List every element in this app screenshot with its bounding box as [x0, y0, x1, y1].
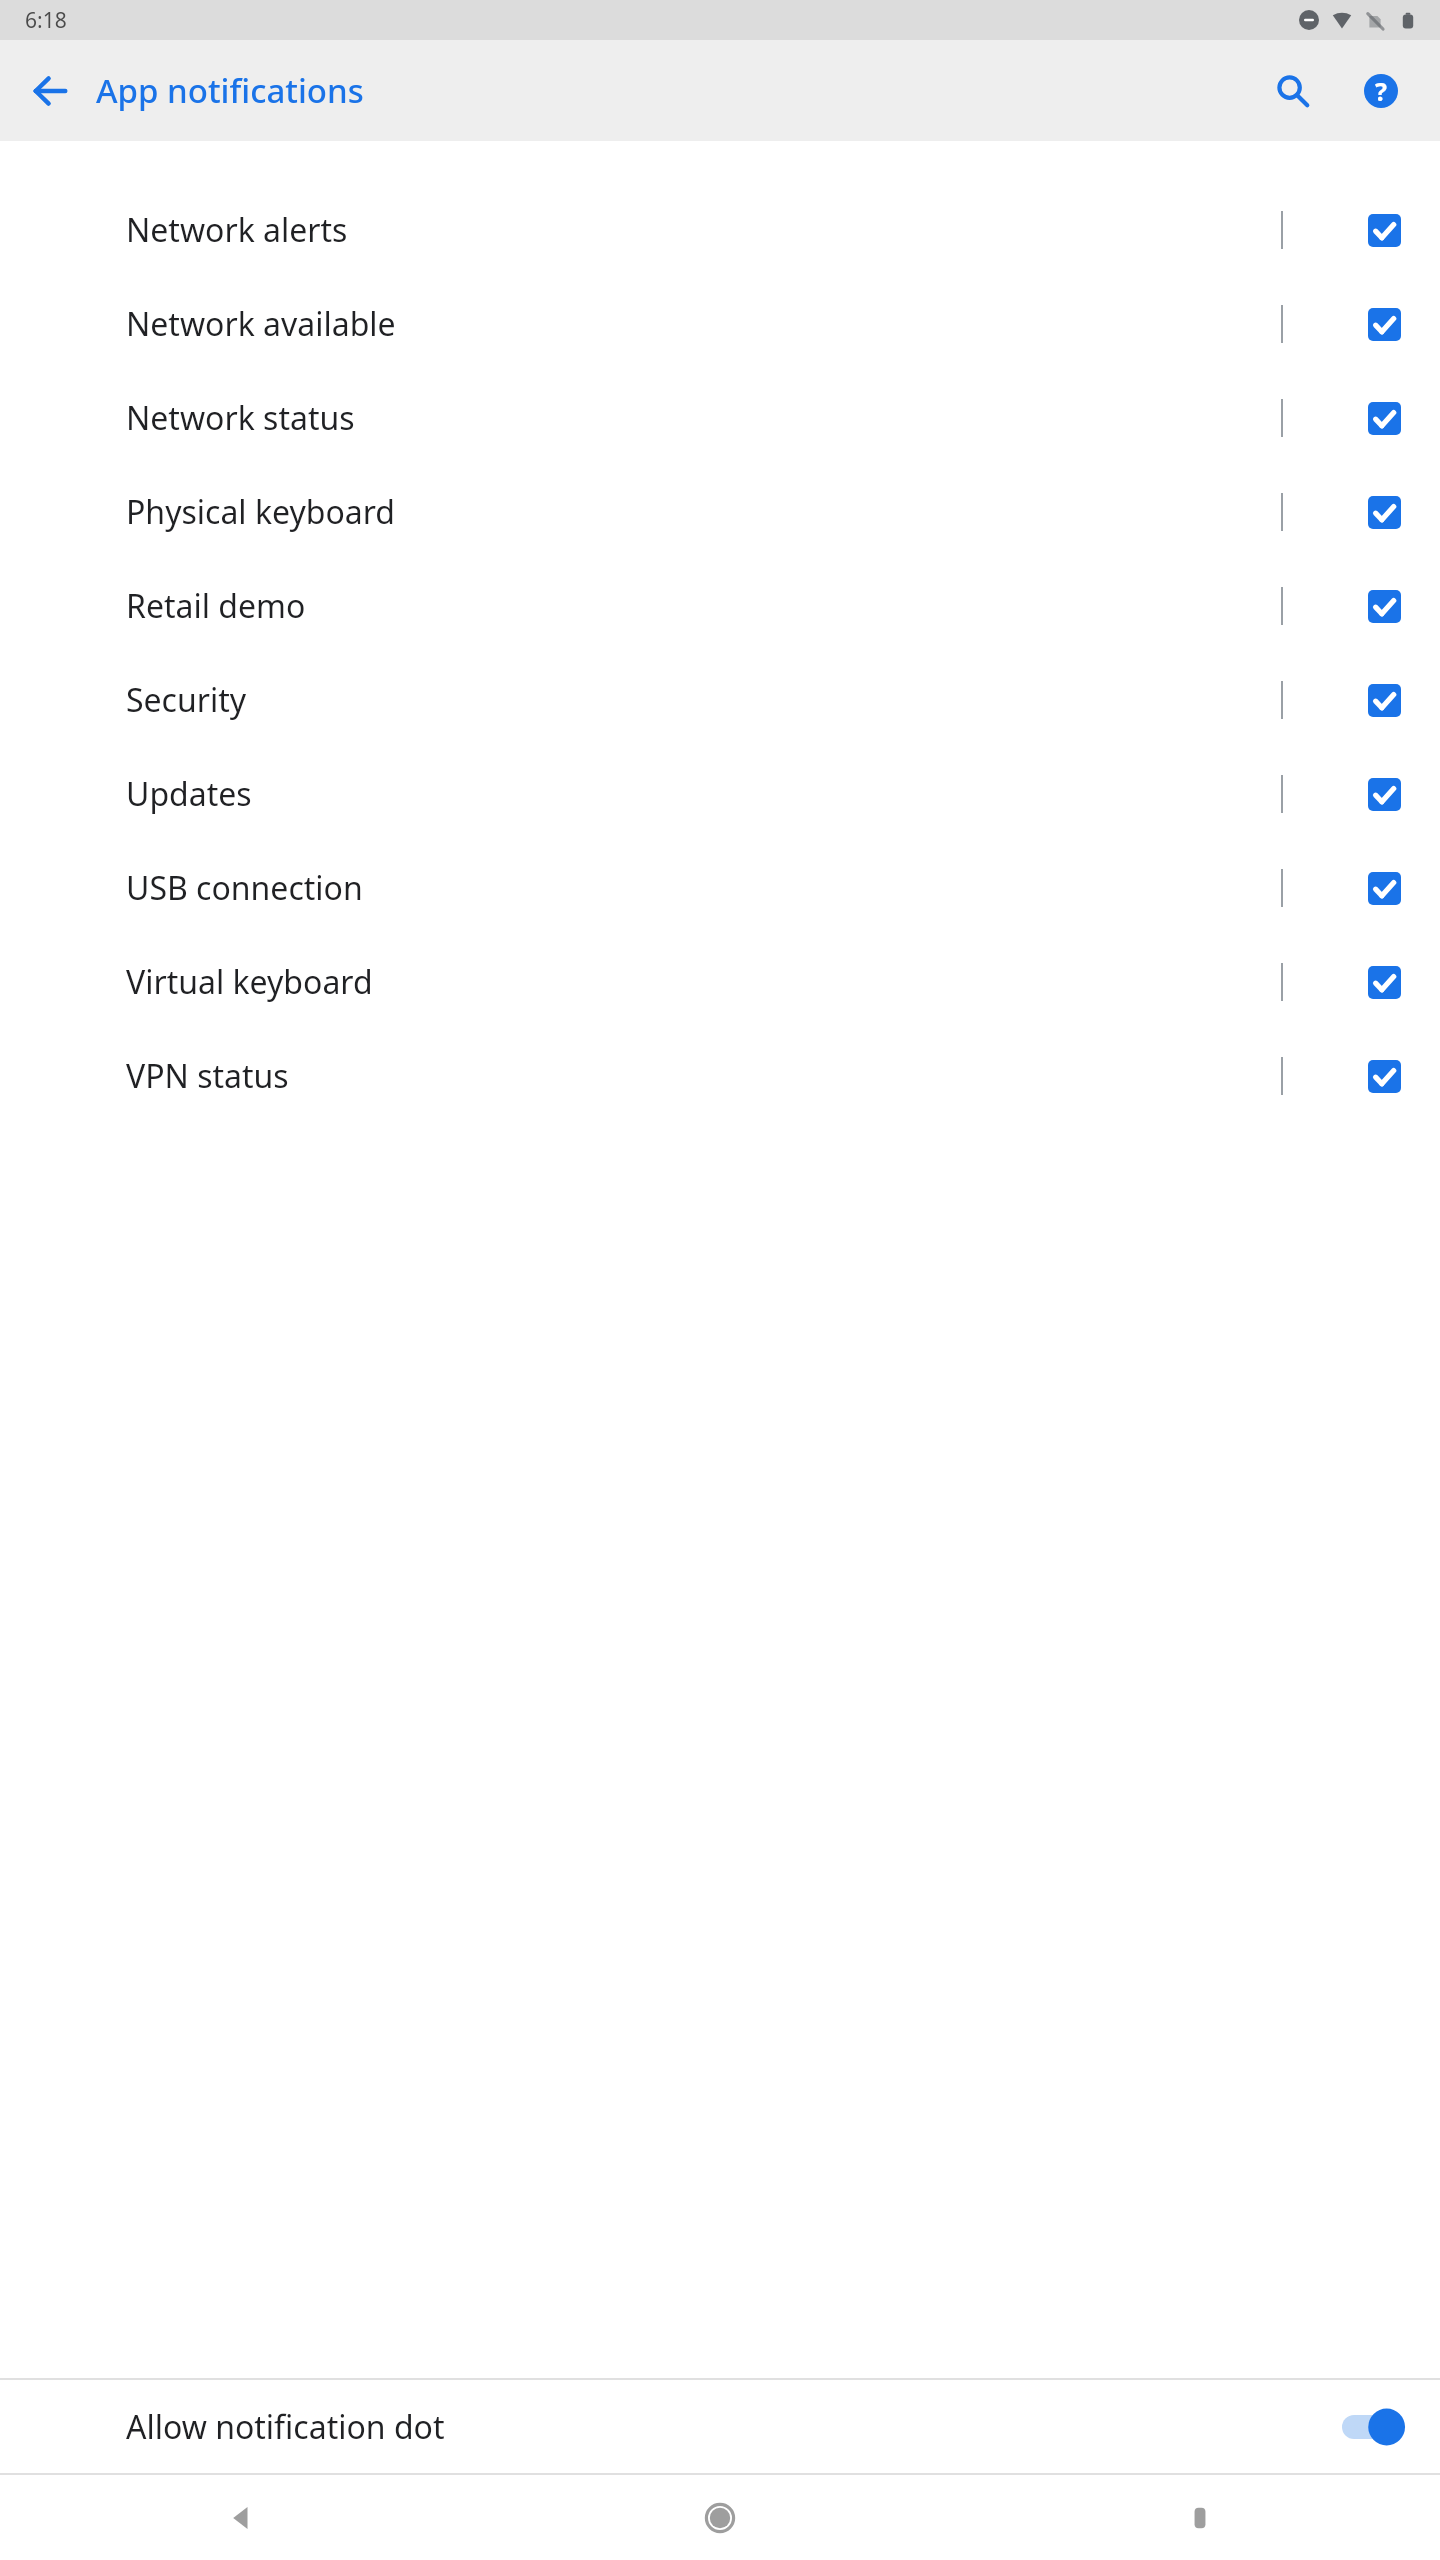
staticText: VPN status — [126, 1054, 289, 1098]
staticText: App notifications — [96, 68, 364, 113]
staticText: Security — [126, 678, 247, 722]
button[interactable]: Retail demo — [0, 559, 1440, 653]
staticText: Network available — [126, 302, 396, 346]
button[interactable]: Help — [1348, 58, 1414, 124]
button[interactable]: Toggle Updates — [1368, 778, 1401, 811]
button[interactable]: Toggle Physical keyboard — [1368, 496, 1401, 529]
button[interactable]: Toggle USB connection — [1368, 872, 1401, 905]
button[interactable]: Updates — [0, 747, 1440, 841]
button[interactable]: Security — [0, 653, 1440, 747]
staticText: 6:18 — [25, 6, 67, 35]
button[interactable]: Recents — [960, 2475, 1440, 2560]
button[interactable]: Network alerts — [0, 183, 1440, 277]
staticText: USB connection — [126, 866, 363, 910]
button[interactable]: Search — [1260, 58, 1326, 124]
button[interactable]: Toggle Network available — [1368, 308, 1401, 341]
button[interactable]: Allow notification dot switch — [1342, 2407, 1404, 2447]
button[interactable]: Toggle Network status — [1368, 402, 1401, 435]
button[interactable]: USB connection — [0, 841, 1440, 935]
button[interactable]: Toggle Network alerts — [1368, 214, 1401, 247]
staticText: Allow notification dot — [126, 2405, 445, 2449]
staticText: ? — [1375, 74, 1387, 108]
staticText: Retail demo — [126, 584, 306, 628]
staticText: Physical keyboard — [126, 490, 395, 534]
button[interactable]: Toggle Retail demo — [1368, 590, 1401, 623]
staticText: Network alerts — [126, 208, 348, 252]
button[interactable]: Toggle VPN status — [1368, 1060, 1401, 1093]
button[interactable]: Toggle Security — [1368, 684, 1401, 717]
button[interactable]: VPN status — [0, 1029, 1440, 1123]
button[interactable]: Virtual keyboard — [0, 935, 1440, 1029]
staticText: Virtual keyboard — [126, 960, 373, 1004]
button[interactable]: Network status — [0, 371, 1440, 465]
button[interactable]: Physical keyboard — [0, 465, 1440, 559]
button[interactable]: Back — [14, 55, 86, 127]
button[interactable]: Home — [480, 2475, 960, 2560]
staticText: Updates — [126, 772, 252, 816]
staticText: Network status — [126, 396, 355, 440]
button[interactable]: Allow notification dot — [0, 2380, 1440, 2473]
button[interactable]: Network available — [0, 277, 1440, 371]
button[interactable]: Back — [0, 2475, 480, 2560]
button[interactable]: Toggle Virtual keyboard — [1368, 966, 1401, 999]
